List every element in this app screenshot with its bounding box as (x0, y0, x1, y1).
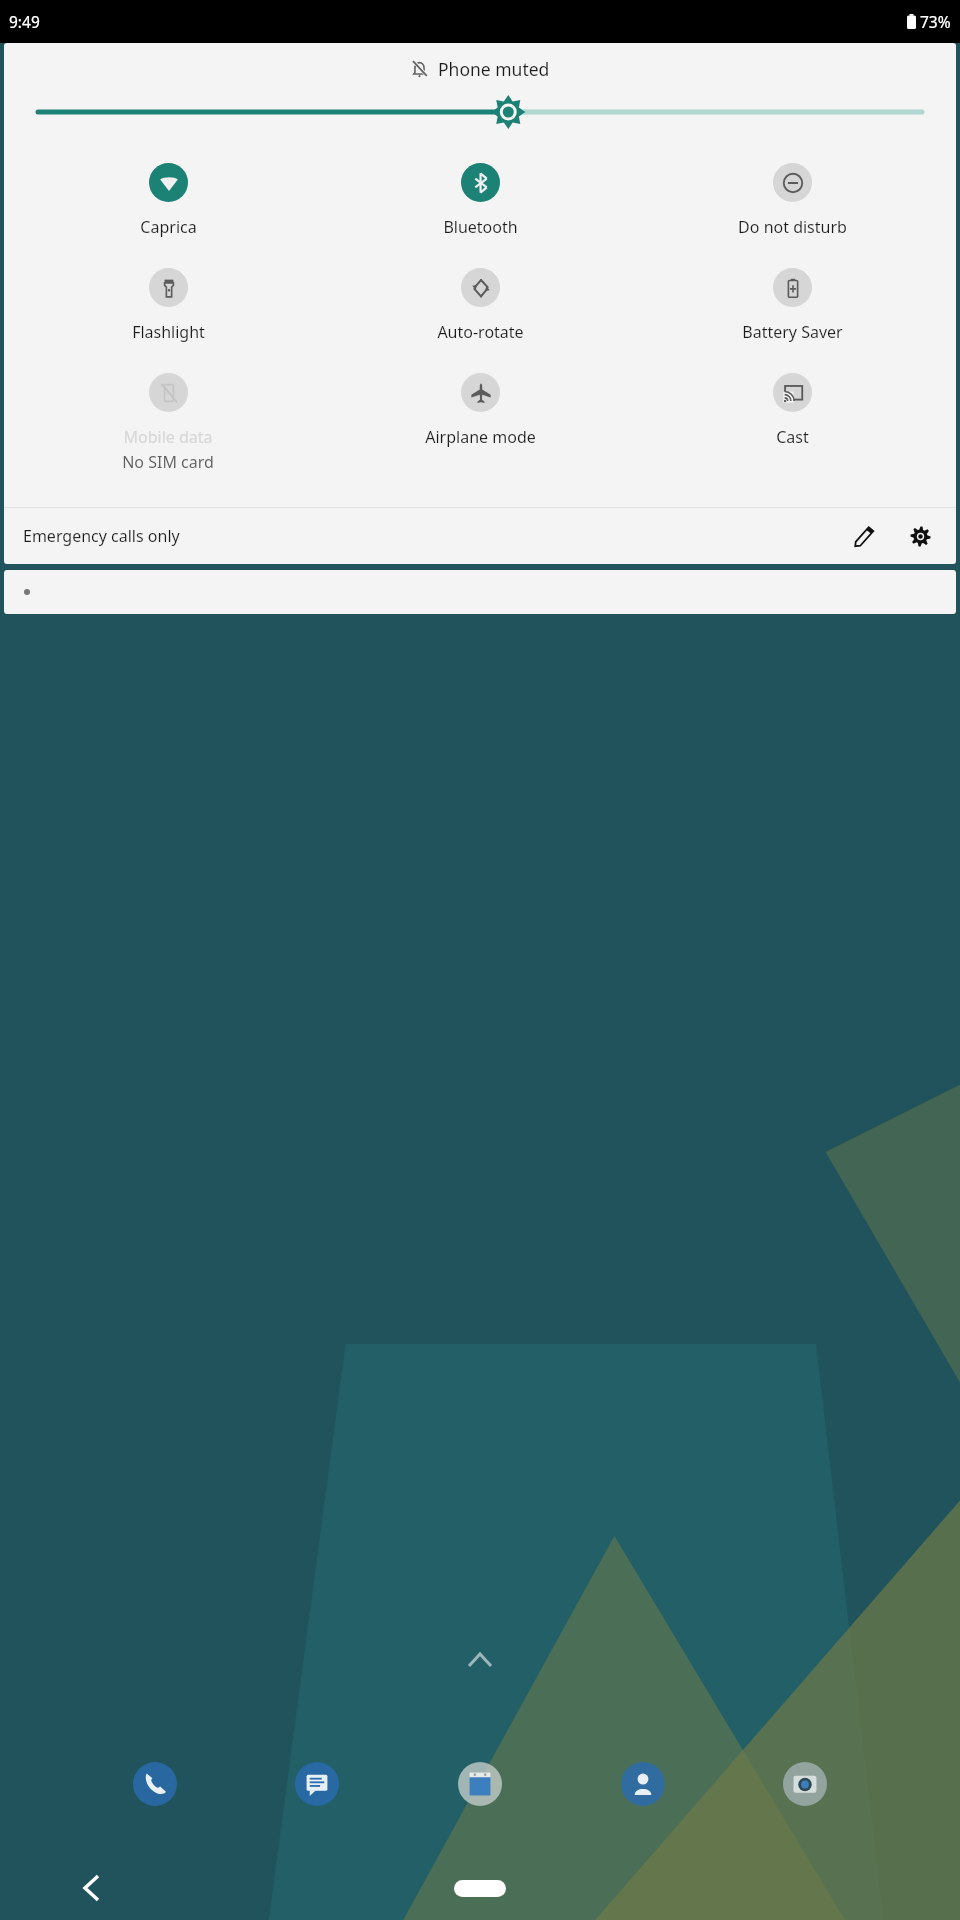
button[interactable]: Back (74, 1871, 108, 1905)
button[interactable]: Phone (133, 1762, 177, 1806)
button[interactable]: Auto-rotate (324, 268, 636, 343)
staticText: 73% (920, 11, 951, 32)
button[interactable]: Caprica (12, 163, 324, 238)
staticText: Bluetooth (443, 216, 518, 238)
button[interactable]: Messages (295, 1762, 339, 1806)
button[interactable]: Do not disturb (636, 163, 948, 238)
button[interactable]: Bluetooth (324, 163, 636, 238)
staticText: Do not disturb (738, 216, 847, 238)
button[interactable] (4, 570, 956, 614)
staticText: Airplane mode (425, 426, 536, 448)
staticText: 9:49 (9, 11, 40, 32)
button[interactable]: Airplane mode (324, 373, 636, 448)
staticText: Battery Saver (742, 321, 843, 343)
button[interactable]: Mobile data (12, 373, 324, 473)
staticText: No SIM card (122, 451, 214, 473)
button[interactable]: Cast (636, 373, 948, 448)
button[interactable]: Phone muted (4, 57, 956, 81)
button[interactable]: Camera (783, 1762, 827, 1806)
button[interactable]: Calendar (458, 1762, 502, 1806)
staticText: Flashlight (132, 321, 205, 343)
button[interactable]: Home (454, 1880, 506, 1897)
button[interactable]: Flashlight (12, 268, 324, 343)
button[interactable]: Settings (903, 519, 937, 553)
button[interactable]: Contacts (621, 1762, 665, 1806)
staticText: Emergency calls only (23, 525, 847, 547)
button[interactable]: Brightness (38, 97, 922, 127)
staticText: Caprica (140, 216, 197, 238)
staticText: Mobile data (123, 426, 213, 448)
button[interactable]: Battery Saver (636, 268, 948, 343)
staticText: Phone muted (438, 57, 550, 81)
staticText: Auto-rotate (437, 321, 524, 343)
button[interactable]: Edit tiles (847, 519, 881, 553)
staticText: Cast (776, 426, 809, 448)
